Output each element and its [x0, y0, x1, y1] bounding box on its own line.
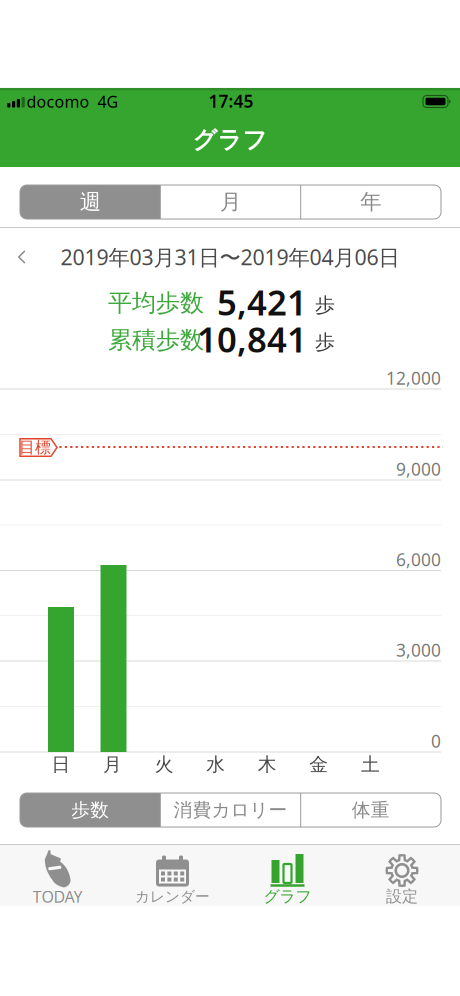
staticText: グラフ [263, 887, 311, 906]
staticText: 5,421 [217, 279, 307, 325]
staticText: TODAY [32, 886, 82, 907]
staticText: 10,841 [197, 316, 307, 362]
staticText: 月 [103, 753, 122, 776]
staticText: 6,000 [396, 548, 441, 571]
staticText: 歩数 [71, 798, 109, 821]
staticText: グラフ [192, 125, 267, 155]
staticText: 0 [431, 729, 441, 752]
staticText: 金 [309, 753, 328, 776]
staticText: 12,000 [386, 366, 441, 389]
staticText: 体重 [352, 798, 390, 821]
staticText: 4G [97, 91, 118, 112]
staticText: 火 [155, 753, 174, 776]
staticText: カレンダー [135, 887, 210, 905]
button[interactable]: グラフ [231, 844, 344, 905]
button[interactable]: 年 [301, 185, 441, 219]
staticText: 設定 [386, 887, 418, 906]
staticText: 累積歩数 [108, 325, 204, 355]
staticText: 土 [361, 753, 380, 776]
button[interactable]: 体重 [301, 793, 441, 827]
staticText: 年 [360, 189, 381, 215]
staticText: 9,000 [396, 457, 441, 480]
button[interactable]: 歩数 [20, 793, 160, 827]
button[interactable]: 月 [160, 185, 301, 219]
staticText: 消費カロリー [173, 798, 287, 821]
staticText: docomo [26, 91, 89, 112]
button[interactable]: 設定 [345, 844, 458, 905]
staticText: 平均歩数 [108, 288, 204, 318]
button[interactable]: 週 [20, 185, 160, 219]
staticText: 日 [51, 753, 70, 776]
button[interactable]: 消費カロリー [160, 793, 301, 827]
button[interactable]: TODAY [1, 844, 114, 905]
staticText: 木 [258, 753, 277, 776]
staticText: 月 [220, 189, 241, 215]
staticText: 週 [80, 189, 101, 215]
staticText: 歩 [315, 293, 335, 317]
button[interactable]: 前の週 [7, 242, 37, 272]
staticText: 目標 [19, 438, 51, 457]
staticText: 歩 [315, 330, 335, 354]
button[interactable]: カレンダー [116, 844, 229, 905]
staticText: 2019年03月31日〜2019年04月06日 [60, 243, 399, 271]
staticText: 3,000 [396, 638, 441, 661]
staticText: 17:45 [208, 89, 253, 112]
staticText: 水 [206, 753, 225, 776]
